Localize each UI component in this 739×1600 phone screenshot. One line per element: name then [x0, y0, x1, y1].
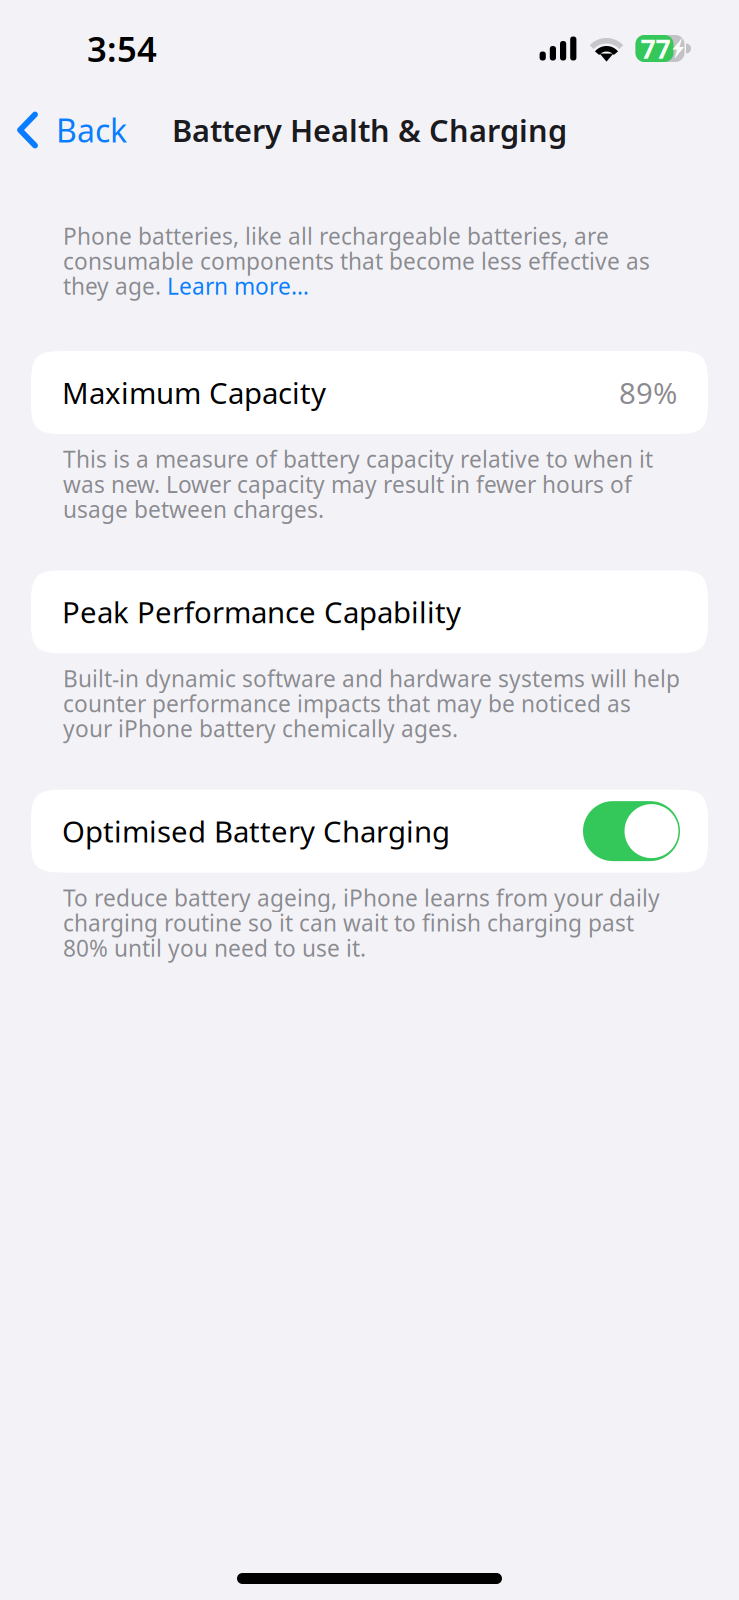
staticText: Peak Performance Capability [62, 592, 461, 631]
button[interactable]: Peak Performance Capability [0, 570, 739, 653]
staticText: Back [56, 109, 127, 151]
staticText: Phone batteries, like all rechargeable b… [63, 221, 609, 251]
staticText: 77 [640, 31, 670, 66]
button[interactable]: Back [0, 97, 141, 163]
staticText: consumable components that become less e… [63, 246, 650, 276]
staticText: To reduce battery ageing, iPhone learns … [63, 883, 660, 963]
staticText: Maximum Capacity [62, 373, 326, 412]
staticText: Built-in dynamic software and hardware s… [63, 663, 680, 744]
button[interactable]: Maximum Capacity [0, 351, 739, 434]
staticText: Learn more… [167, 271, 309, 301]
staticText: 89% [619, 373, 677, 412]
staticText: Optimised Battery Charging [62, 812, 450, 851]
button[interactable]: Optimised Battery Charging [0, 790, 739, 873]
staticText: 3:54 [87, 25, 157, 71]
staticText: they age. [63, 271, 167, 301]
staticText: This is a measure of battery capacity re… [63, 444, 653, 524]
button[interactable]: Learn more… [167, 271, 309, 301]
staticText: Battery Health & Charging [172, 110, 567, 150]
